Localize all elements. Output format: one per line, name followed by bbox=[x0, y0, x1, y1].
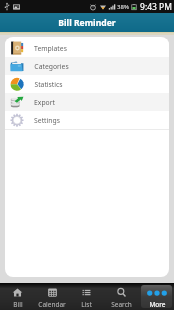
button[interactable]: List bbox=[69, 283, 104, 310]
staticText: Export bbox=[34, 98, 55, 107]
button[interactable]: Search bbox=[104, 283, 139, 310]
staticText: Calendar bbox=[38, 300, 66, 309]
staticText: List bbox=[81, 300, 92, 309]
staticText: Search bbox=[111, 300, 132, 309]
button[interactable]: Categories bbox=[5, 57, 169, 75]
button[interactable]: Settings bbox=[5, 111, 169, 129]
button[interactable]: Calendar bbox=[34, 283, 69, 310]
staticText: More bbox=[149, 300, 166, 309]
staticText: Categories bbox=[34, 62, 69, 71]
staticText: Settings bbox=[34, 116, 60, 125]
button[interactable]: More bbox=[139, 283, 174, 310]
staticText: Bill bbox=[13, 300, 23, 309]
staticText: Templates bbox=[34, 44, 67, 53]
staticText: 38% bbox=[117, 3, 129, 11]
staticText: Statistics bbox=[34, 80, 63, 89]
button[interactable]: Statistics bbox=[5, 75, 169, 93]
button[interactable]: Templates bbox=[5, 39, 169, 57]
button[interactable]: Bill bbox=[0, 283, 34, 310]
staticText: 9:43 PM bbox=[140, 1, 172, 13]
staticText: Bill Reminder bbox=[58, 17, 116, 29]
button[interactable]: Export bbox=[5, 93, 169, 111]
